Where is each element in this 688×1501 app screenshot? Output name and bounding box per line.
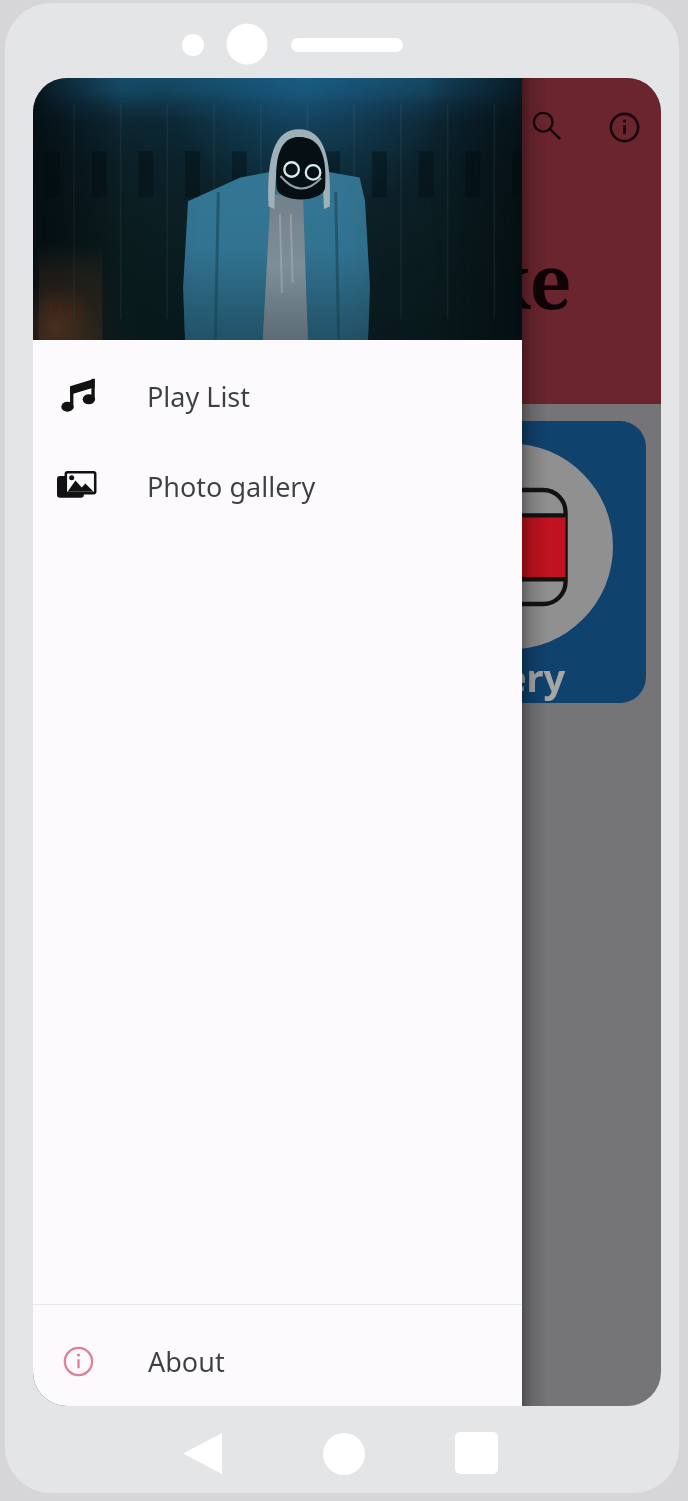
button[interactable]: Search bbox=[517, 96, 577, 156]
staticText: Gallery bbox=[431, 651, 566, 703]
button[interactable]: Photo gallery bbox=[33, 441, 522, 531]
staticText: Play List bbox=[147, 378, 251, 415]
button[interactable]: Info bbox=[594, 97, 654, 157]
staticText: Photo gallery bbox=[147, 468, 316, 505]
staticText: About bbox=[148, 1343, 225, 1380]
button[interactable]: Play List bbox=[33, 351, 522, 441]
button[interactable]: Gallery bbox=[396, 421, 646, 703]
staticText: Make bbox=[369, 230, 572, 331]
button[interactable]: About bbox=[33, 1316, 522, 1406]
